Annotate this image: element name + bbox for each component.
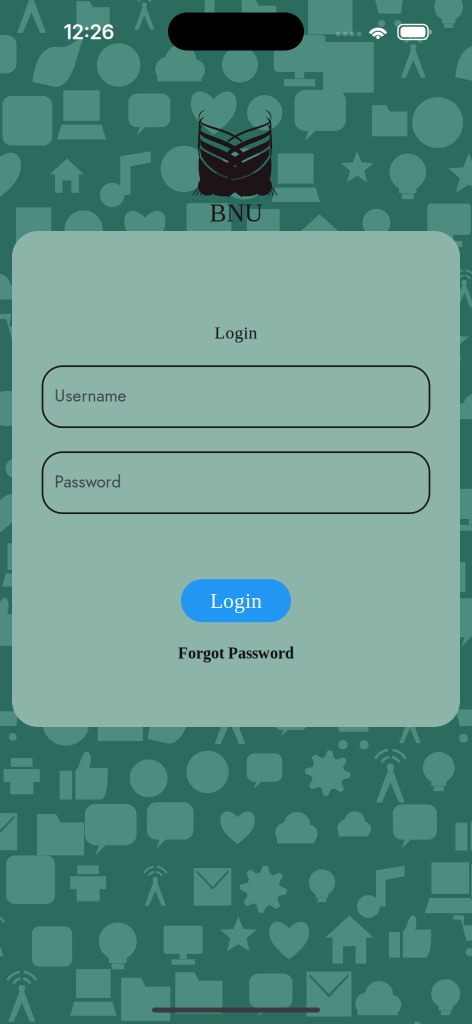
button[interactable]: Forgot Password — [178, 643, 294, 663]
button[interactable]: Password — [42, 452, 429, 513]
staticText: Login — [210, 589, 262, 612]
staticText: 12:26 — [63, 20, 114, 44]
staticText: Username — [54, 384, 126, 408]
button[interactable]: Username — [42, 366, 429, 427]
staticText: Login — [214, 323, 257, 342]
staticText: Password — [54, 470, 121, 494]
staticText: Forgot Password — [178, 644, 294, 662]
button[interactable]: Login — [181, 579, 291, 622]
staticText: BNU — [209, 199, 262, 227]
